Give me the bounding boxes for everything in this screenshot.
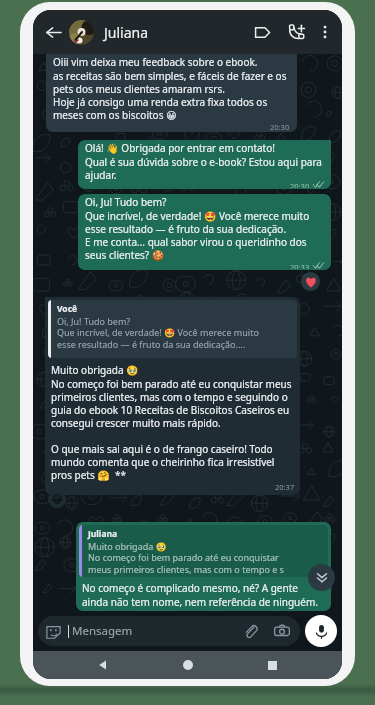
button[interactable]: Labels	[249, 19, 275, 45]
button[interactable]: Mensagem	[38, 616, 300, 646]
staticText: Juliana	[104, 23, 149, 42]
staticText: 20:30	[290, 181, 310, 188]
staticText: 20:30	[270, 122, 290, 131]
button[interactable]: Back	[89, 651, 117, 679]
staticText: Muito obrigada 🥹 No começo foi bem parad…	[51, 363, 292, 482]
staticText: Juliana	[88, 528, 118, 540]
button[interactable]: More options	[313, 20, 337, 44]
button[interactable]: Call	[284, 19, 310, 45]
staticText: Você	[57, 303, 78, 315]
staticText: 😂	[51, 493, 64, 506]
staticText: 20:37	[275, 482, 295, 492]
button[interactable]: Back	[39, 18, 67, 46]
staticText: Oi, Ju! Tudo bem? Que incrível, de verda…	[57, 315, 259, 351]
button[interactable]: Contact photo	[69, 20, 94, 45]
button[interactable]: Home	[174, 651, 202, 679]
staticText: Mensagem	[72, 623, 133, 639]
staticText: Olá! 👋 Obrigada por entrar em contato! Q…	[85, 141, 322, 181]
button[interactable]: Heart reaction	[301, 272, 320, 291]
staticText: Muito obrigada 🥹 No começo foi bem parad…	[88, 540, 284, 576]
button[interactable]: Record voice message	[305, 615, 337, 647]
staticText: Oiii vim deixa meu feedback sobre o eboo…	[53, 55, 287, 122]
button[interactable]: Scroll to bottom	[308, 564, 335, 591]
staticText: Oi, Ju! Tudo bem? Que incrível, de verda…	[85, 195, 310, 262]
button[interactable]: Recent apps	[258, 651, 286, 679]
staticText: No começo é complicado mesmo, né? A gent…	[82, 581, 318, 608]
staticText: 20:33	[290, 262, 310, 269]
button[interactable]: Laughing reaction	[48, 490, 66, 508]
